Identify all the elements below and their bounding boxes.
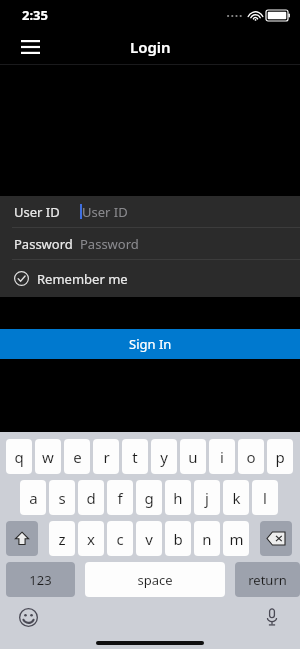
staticText: p: [275, 447, 285, 467]
button[interactable]: i: [209, 439, 235, 474]
staticText: n: [202, 529, 212, 549]
button[interactable]: return: [235, 562, 300, 597]
staticText: b: [173, 529, 183, 549]
staticText: Password: [80, 235, 139, 253]
button[interactable]: b: [165, 521, 191, 556]
button[interactable]: d: [78, 480, 104, 515]
staticText: j: [205, 488, 209, 508]
staticText: q: [14, 447, 24, 467]
staticText: o: [246, 447, 256, 467]
staticText: v: [145, 529, 153, 549]
staticText: 2:35: [22, 6, 48, 24]
staticText: User ID: [82, 203, 128, 221]
button[interactable]: v: [136, 521, 162, 556]
staticText: 123: [29, 571, 52, 589]
button[interactable]: l: [252, 480, 278, 515]
button[interactable]: q: [6, 439, 32, 474]
button[interactable]: z: [49, 521, 75, 556]
staticText: y: [160, 447, 168, 467]
staticText: e: [73, 447, 82, 467]
button[interactable]: g: [136, 480, 162, 515]
button[interactable]: Shift: [6, 521, 38, 556]
button[interactable]: x: [78, 521, 104, 556]
button[interactable]: space: [85, 562, 225, 597]
staticText: space: [137, 571, 173, 589]
button[interactable]: Menu: [14, 31, 46, 63]
staticText: s: [58, 488, 66, 508]
staticText: u: [188, 447, 198, 467]
button[interactable]: c: [107, 521, 133, 556]
staticText: g: [144, 488, 154, 508]
staticText: d: [86, 488, 96, 508]
staticText: Remember me: [37, 270, 128, 288]
button[interactable]: a: [20, 480, 46, 515]
button[interactable]: User ID: [0, 196, 300, 227]
button[interactable]: o: [238, 439, 264, 474]
staticText: h: [173, 488, 183, 508]
staticText: return: [248, 571, 287, 589]
button[interactable]: j: [194, 480, 220, 515]
staticText: w: [42, 447, 54, 467]
button[interactable]: y: [151, 439, 177, 474]
staticText: r: [103, 447, 110, 467]
button[interactable]: k: [223, 480, 249, 515]
staticText: m: [229, 529, 244, 549]
staticText: Login: [130, 37, 171, 57]
button[interactable]: w: [35, 439, 61, 474]
button[interactable]: m: [223, 521, 249, 556]
button[interactable]: Sign In: [0, 329, 300, 359]
button[interactable]: s: [49, 480, 75, 515]
button[interactable]: t: [122, 439, 148, 474]
button[interactable]: Emoji: [13, 602, 43, 632]
button[interactable]: n: [194, 521, 220, 556]
button[interactable]: Backspace: [260, 521, 292, 556]
staticText: l: [263, 488, 267, 508]
staticText: z: [58, 529, 66, 549]
staticText: Password: [14, 235, 73, 253]
button[interactable]: r: [93, 439, 119, 474]
staticText: x: [87, 529, 95, 549]
button[interactable]: Dictation: [257, 602, 287, 632]
staticText: User ID: [14, 203, 60, 221]
button[interactable]: f: [107, 480, 133, 515]
button[interactable]: u: [180, 439, 206, 474]
button[interactable]: 123: [6, 562, 75, 597]
staticText: c: [116, 529, 124, 549]
staticText: f: [117, 488, 123, 508]
button[interactable]: e: [64, 439, 90, 474]
button[interactable]: Remember me: [0, 260, 300, 297]
staticText: k: [232, 488, 241, 508]
button[interactable]: p: [267, 439, 293, 474]
button[interactable]: h: [165, 480, 191, 515]
staticText: a: [29, 488, 38, 508]
staticText: Sign In: [129, 335, 172, 353]
staticText: t: [132, 447, 138, 467]
button[interactable]: Password: [0, 228, 300, 259]
staticText: i: [220, 447, 224, 467]
